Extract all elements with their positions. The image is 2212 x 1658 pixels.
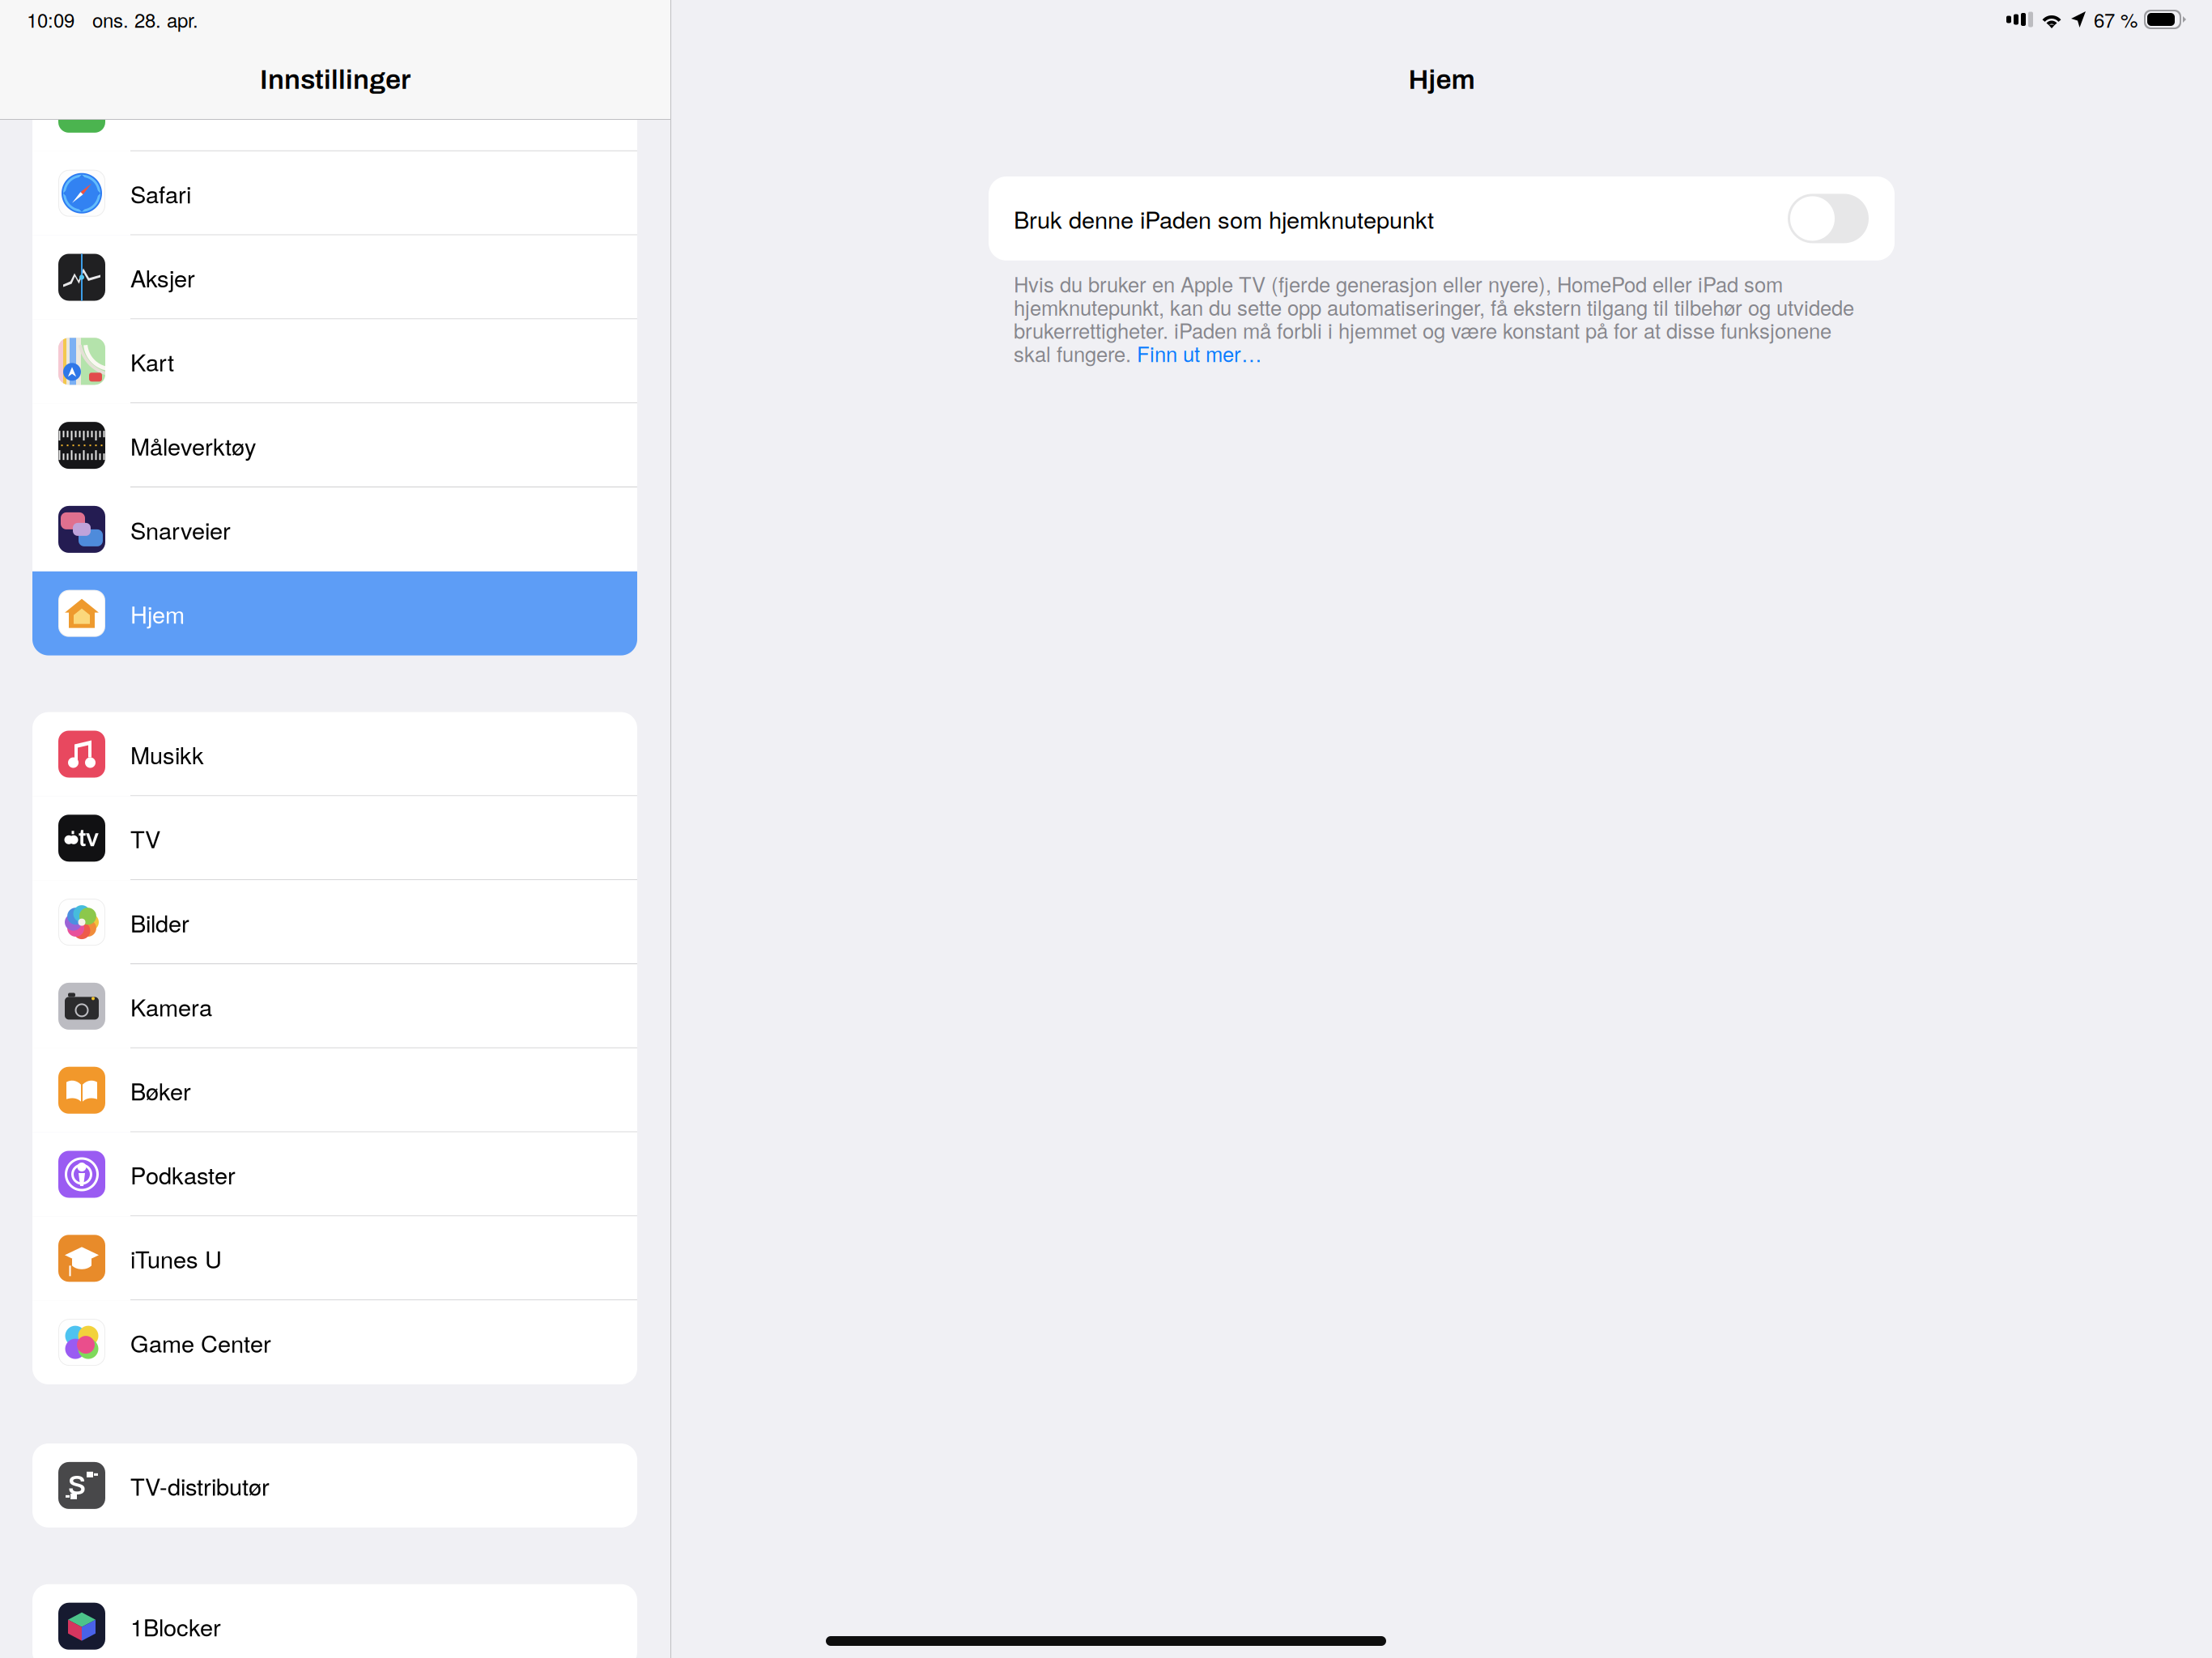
staticText: brukerrettigheter. iPaden må forbli i hj… xyxy=(1014,315,1831,345)
button[interactable]: Bruk denne iPaden som hjemknutepunkt xyxy=(989,176,1895,261)
staticText: Game Center xyxy=(130,1326,271,1359)
button[interactable]: tv xyxy=(32,796,637,880)
button[interactable]: Podkaster xyxy=(32,1132,637,1216)
button[interactable]: Helse xyxy=(32,67,637,151)
staticText: Innstillinger xyxy=(260,65,410,95)
button[interactable]: Bøker xyxy=(32,1048,637,1132)
staticText: tv xyxy=(79,825,99,851)
button[interactable]: 1Blocker xyxy=(32,1584,637,1658)
button[interactable]: Kamera xyxy=(32,964,637,1048)
staticText: Finn ut mer… xyxy=(1137,338,1262,368)
button[interactable]: S xyxy=(32,1443,637,1527)
staticText: TV xyxy=(130,821,160,855)
button[interactable]: Safari xyxy=(32,151,637,235)
staticText: iTunes U xyxy=(130,1241,222,1275)
staticText: Bilder xyxy=(130,905,189,939)
staticText: 1Blocker xyxy=(130,1609,221,1643)
staticText: Hjem xyxy=(130,597,185,630)
button[interactable]: Måleverktøy xyxy=(32,403,637,487)
staticText: Hjem xyxy=(1408,65,1475,95)
button[interactable]: Musikk xyxy=(32,712,637,796)
button[interactable]: Aksjer xyxy=(32,235,637,319)
staticText: Bøker xyxy=(130,1073,191,1107)
staticText: Snarveier xyxy=(130,513,231,546)
staticText: Musikk xyxy=(130,737,204,771)
staticText: skal fungere. xyxy=(1014,338,1137,368)
staticText: Helse xyxy=(130,92,190,126)
button[interactable]: Hjem xyxy=(32,571,637,655)
button[interactable]: Bilder xyxy=(32,880,637,964)
staticText: Aksjer xyxy=(130,260,195,294)
staticText: 67 % xyxy=(2094,6,2138,33)
staticText: TV-distributør xyxy=(130,1469,270,1502)
staticText: Måleverktøy xyxy=(130,429,257,462)
staticText: Bruk denne iPaden som hjemknutepunkt xyxy=(1014,202,1434,235)
staticText: ons. 28. apr. xyxy=(92,6,198,33)
staticText: Kamera xyxy=(130,989,212,1023)
staticText: Safari xyxy=(130,176,191,210)
button[interactable]: iTunes U xyxy=(32,1216,637,1300)
button[interactable]: Kart xyxy=(32,319,637,403)
staticText: Podkaster xyxy=(130,1157,236,1191)
button[interactable]: Game Center xyxy=(32,1300,637,1384)
staticText: 10:09 xyxy=(27,6,74,33)
staticText: hjemknutepunkt, kan du sette opp automat… xyxy=(1014,292,1854,322)
staticText: S xyxy=(68,1471,86,1500)
staticText: Hvis du bruker en Apple TV (fjerde gener… xyxy=(1014,269,1783,298)
button[interactable]: Snarveier xyxy=(32,487,637,571)
button[interactable]: Finn ut mer… xyxy=(1137,338,1262,368)
staticText: Kart xyxy=(130,344,174,378)
